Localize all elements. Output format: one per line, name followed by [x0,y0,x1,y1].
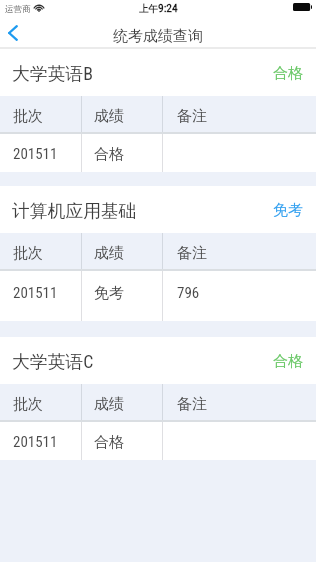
staticText: 免考 [273,201,303,220]
staticText: 计算机应用基础 [12,200,137,222]
staticText: 统考成绩查询 [113,27,203,46]
staticText: 备注 [177,395,207,414]
staticText: 合格 [273,64,303,83]
staticText: 合格 [94,433,124,452]
staticText: 大学英语C [12,351,94,373]
staticText: 201511 [13,433,58,451]
staticText: 成绩 [94,107,124,126]
staticText: 免考 [94,284,124,303]
staticText: 备注 [177,244,207,263]
button[interactable]: 大学英语C [0,337,316,460]
staticText: 合格 [94,145,124,164]
staticText: 批次 [13,244,43,263]
staticText: 201511 [13,284,58,302]
staticText: 合格 [273,352,303,371]
staticText: 成绩 [94,244,124,263]
button[interactable]: 返回 [0,20,26,49]
staticText: 批次 [13,395,43,414]
staticText: 796 [177,284,200,302]
staticText: 批次 [13,107,43,126]
staticText: 备注 [177,107,207,126]
button[interactable]: 计算机应用基础 [0,186,316,321]
staticText: 成绩 [94,395,124,414]
staticText: 大学英语B [12,63,93,85]
staticText: 上午 [139,3,158,15]
staticText: 运营商 [5,4,31,15]
staticText: 201511 [13,145,58,163]
staticText: 9:24 [158,1,178,14]
button[interactable]: 大学英语B [0,49,316,172]
